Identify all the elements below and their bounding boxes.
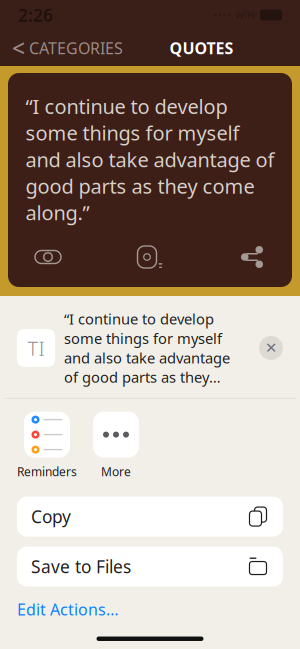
staticText: Edit Actions… (17, 598, 119, 620)
button[interactable]: Close (259, 336, 283, 360)
button[interactable]: < (10, 27, 125, 69)
staticText: I (38, 335, 44, 361)
staticText: QUOTES (169, 37, 233, 59)
staticText: T (27, 335, 38, 361)
staticText: Copy (31, 505, 71, 528)
button[interactable]: Save to Files (17, 546, 283, 586)
staticText: Save to Files (31, 555, 131, 578)
button[interactable]: Share quote (221, 237, 283, 277)
staticText: “I continue to develop some things for m… (25, 93, 274, 226)
staticText: WiFi (235, 9, 255, 21)
button[interactable]: Reminders (17, 412, 77, 479)
staticText: More (101, 464, 131, 479)
staticText: ✕ (265, 340, 277, 356)
staticText: CATEGORIES (29, 37, 123, 59)
button[interactable]: Edit Actions… (4, 591, 296, 627)
button[interactable]: QUOTES (169, 31, 233, 65)
button[interactable]: View quote (17, 237, 79, 277)
staticText: Reminders (17, 464, 77, 479)
button[interactable]: More (93, 412, 139, 479)
staticText: 2:26 (18, 3, 53, 26)
staticText: “I continue to develop some things for m… (64, 309, 230, 387)
button[interactable]: Speak quote (119, 237, 181, 277)
button[interactable]: Copy (17, 496, 283, 536)
staticText: < (12, 33, 25, 63)
